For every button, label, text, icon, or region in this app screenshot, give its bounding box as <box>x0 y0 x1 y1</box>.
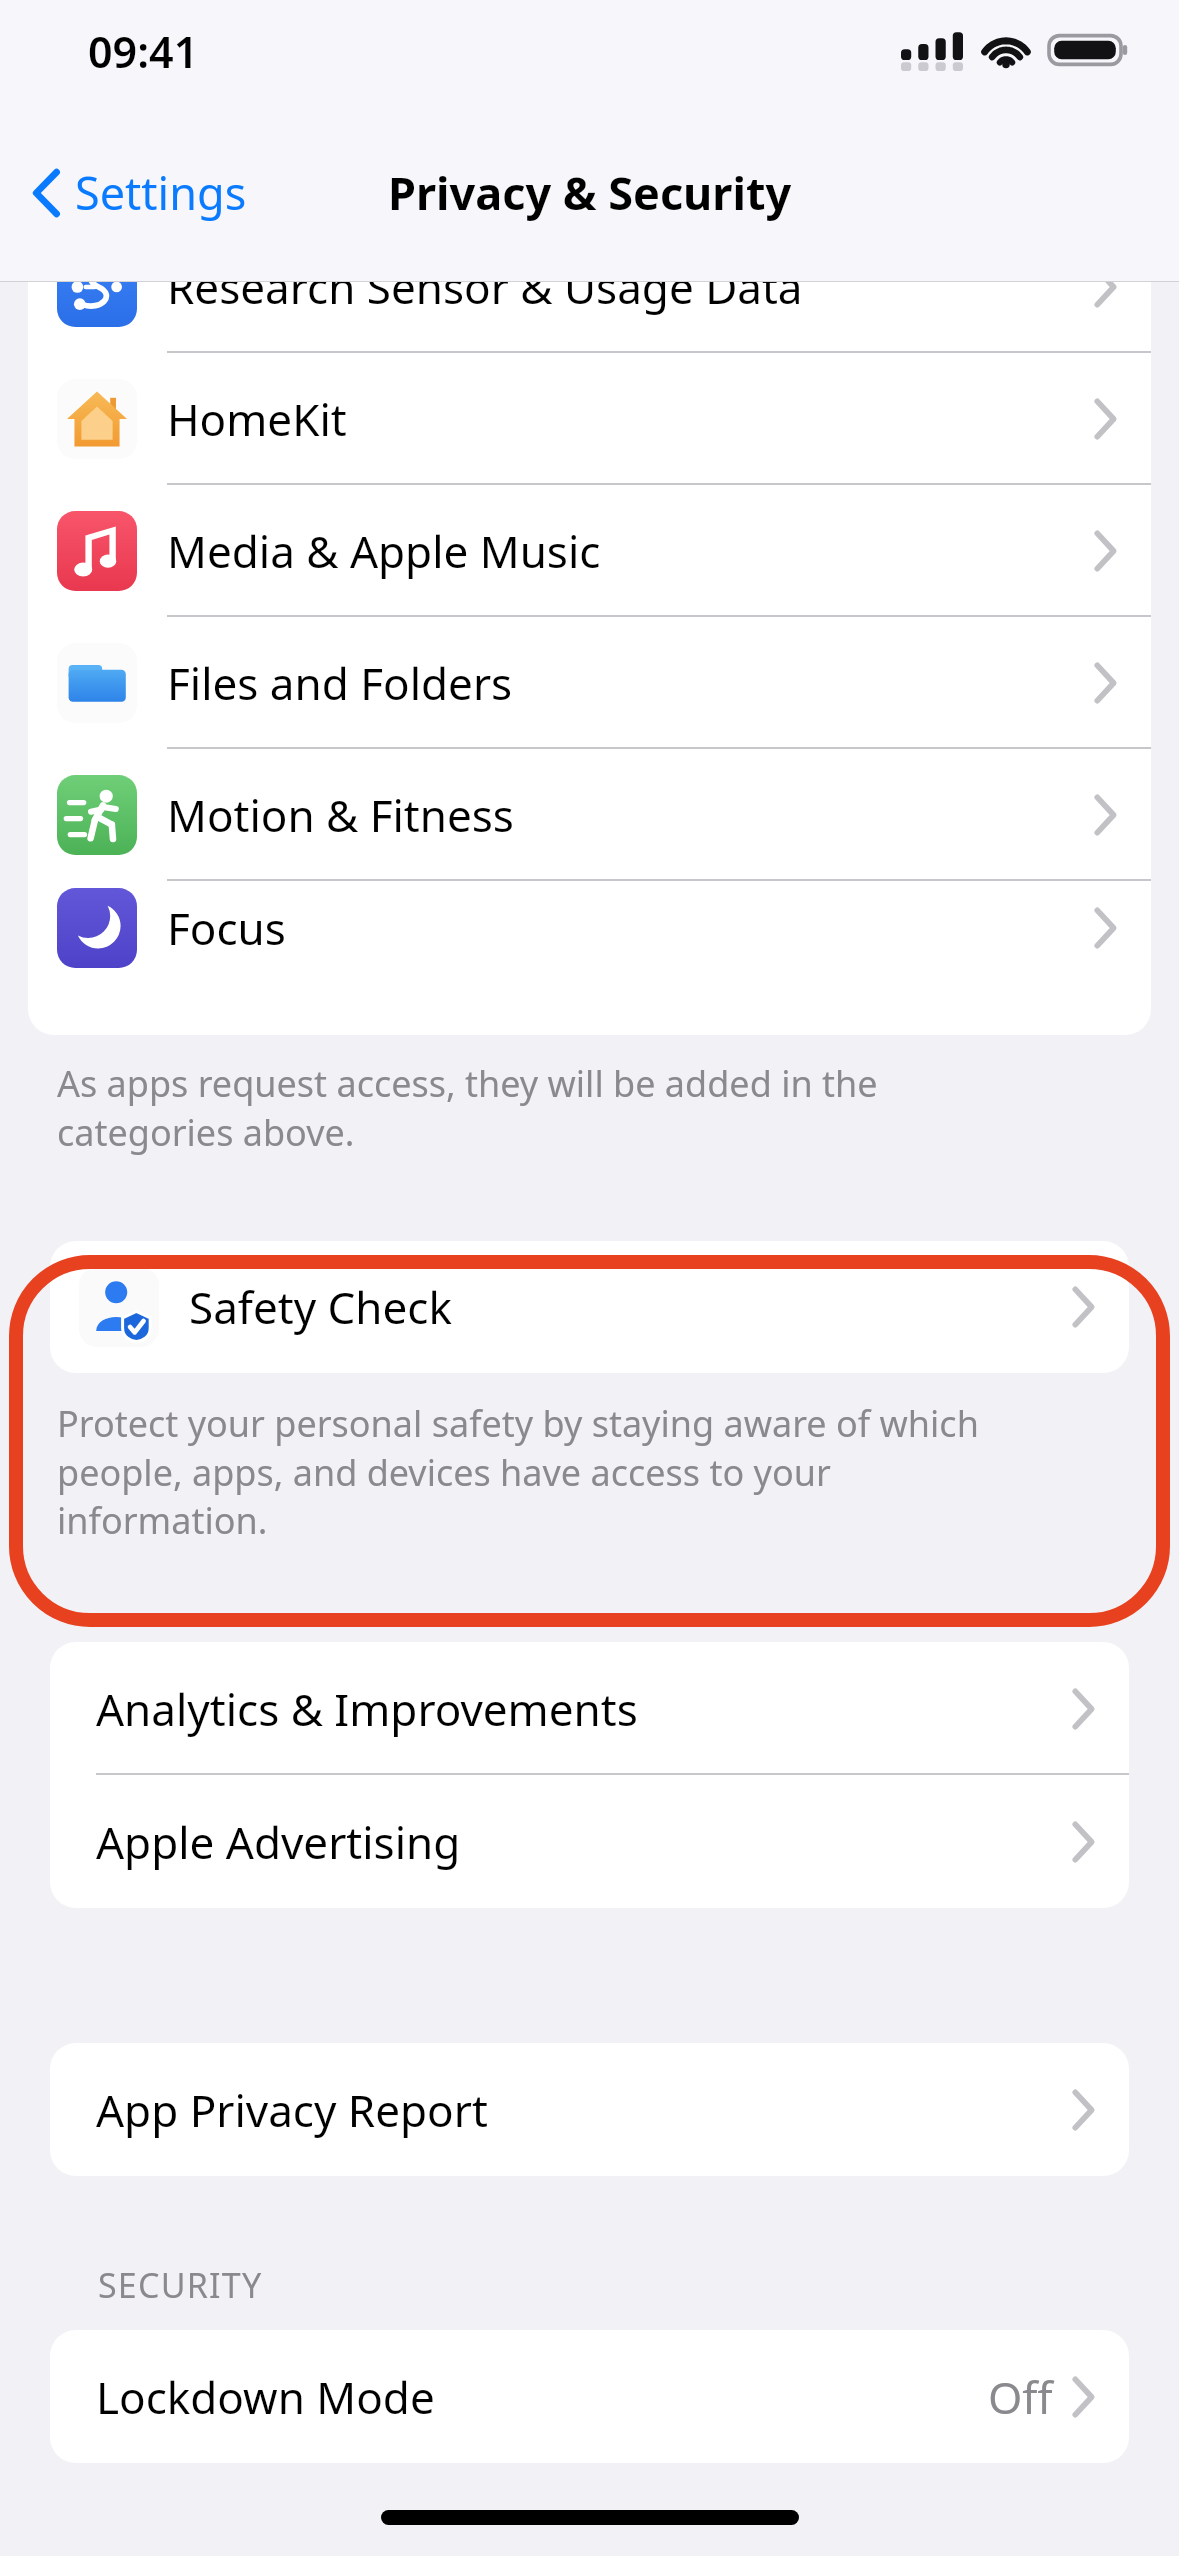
staticText: Research Sensor & Usage Data <box>167 282 803 317</box>
staticText: Protect your personal safety by staying … <box>57 1399 979 1544</box>
staticText: Lockdown Mode <box>96 2367 435 2427</box>
staticText: SECURITY <box>98 2262 263 2308</box>
button[interactable]: Lockdown Mode <box>50 2330 1129 2463</box>
button[interactable]: Media & Apple Music <box>28 485 1151 617</box>
staticText: Safety Check <box>189 1277 452 1337</box>
button[interactable]: Research Sensor & Usage Data <box>28 282 1151 353</box>
staticText: Media & Apple Music <box>167 521 601 581</box>
staticText: Off <box>988 2367 1053 2427</box>
button[interactable]: Analytics & Improvements <box>50 1642 1129 1775</box>
staticText: Privacy & Security <box>388 162 792 223</box>
button[interactable]: Settings <box>20 152 259 233</box>
staticText: Analytics & Improvements <box>96 1679 638 1739</box>
staticText: Apple Advertising <box>96 1812 461 1872</box>
button[interactable]: Files and Folders <box>28 617 1151 749</box>
button[interactable]: App Privacy Report <box>50 2043 1129 2176</box>
staticText: Motion & Fitness <box>167 785 514 845</box>
staticText: Focus <box>167 898 286 958</box>
staticText: Files and Folders <box>167 653 513 713</box>
button[interactable]: Apple Advertising <box>50 1775 1129 1908</box>
button[interactable]: HomeKit <box>28 353 1151 485</box>
staticText: Settings <box>75 162 247 223</box>
button[interactable]: Motion & Fitness <box>28 749 1151 881</box>
staticText: 09:41 <box>88 22 199 81</box>
button[interactable]: Focus <box>28 881 1151 974</box>
button[interactable]: Safety Check <box>50 1241 1129 1373</box>
staticText: As apps request access, they will be add… <box>57 1059 878 1156</box>
staticText: App Privacy Report <box>96 2080 488 2140</box>
staticText: HomeKit <box>167 389 347 449</box>
